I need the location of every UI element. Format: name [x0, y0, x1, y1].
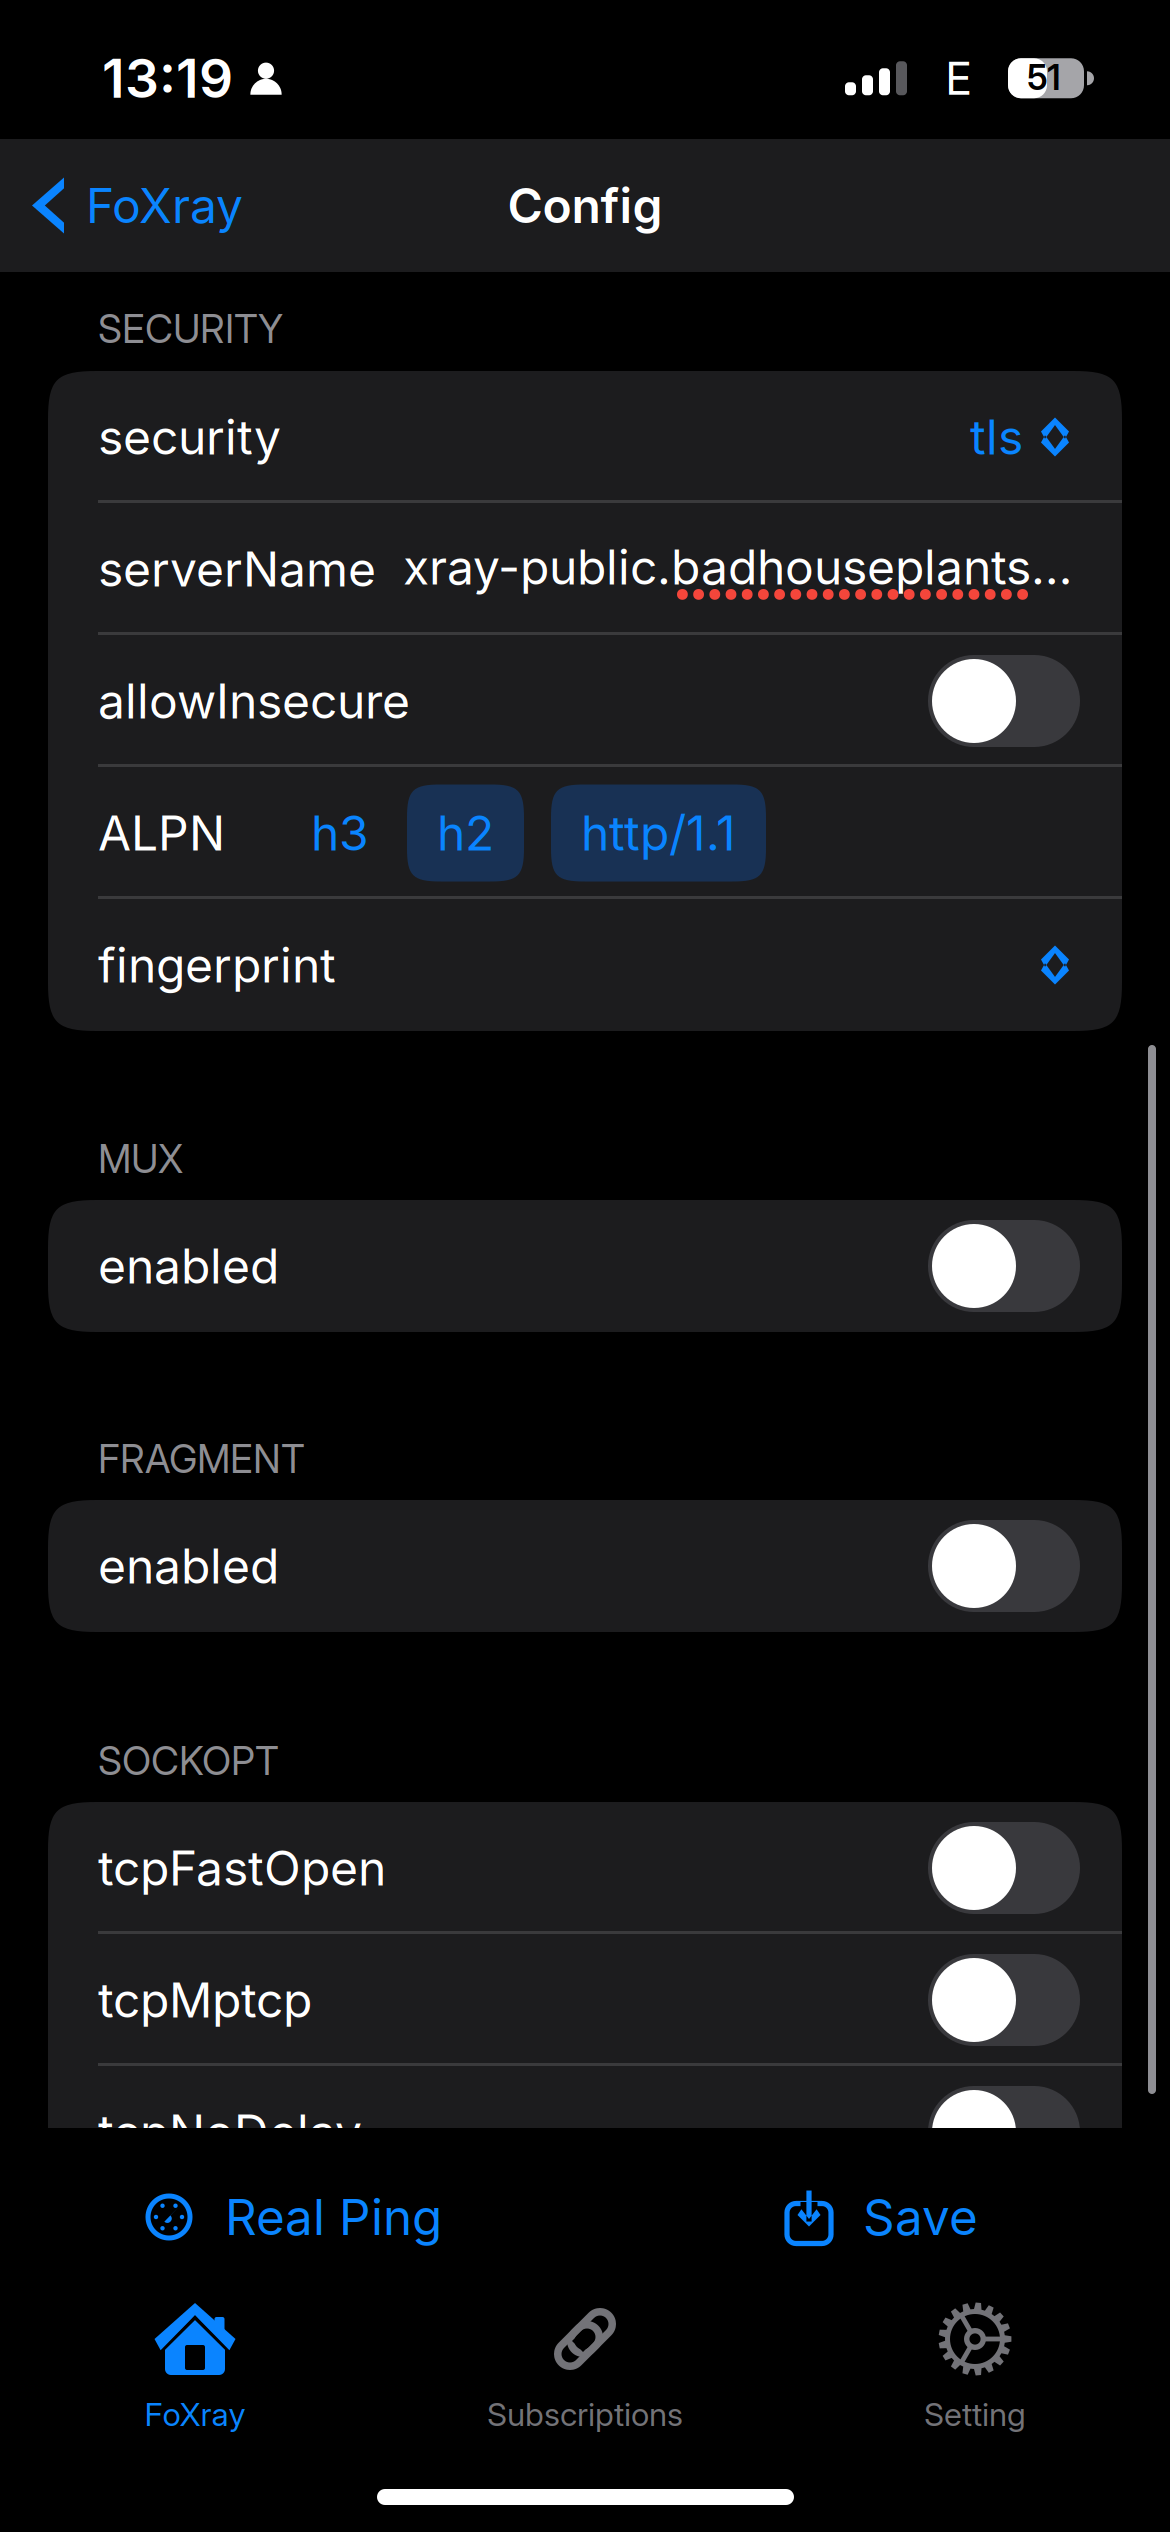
- button[interactable]: Setting: [780, 2291, 1170, 2431]
- button[interactable]: enabled: [48, 1500, 1122, 1632]
- staticText: FoXray: [86, 176, 243, 235]
- button[interactable]: serverName: [48, 503, 1122, 635]
- button[interactable]: tcpFastOpen: [48, 1802, 1122, 1934]
- button[interactable]: tcpNoDelay: [48, 2066, 1122, 2198]
- button[interactable]: Save: [757, 2169, 1008, 2265]
- button[interactable]: FoXray: [0, 2291, 390, 2431]
- staticText: enabled: [98, 1537, 279, 1595]
- staticText: Real Ping: [225, 2187, 442, 2247]
- staticText: Setting: [924, 2395, 1026, 2434]
- button[interactable]: http/1.1: [551, 784, 766, 881]
- staticText: tcpNoDelay: [98, 2103, 362, 2161]
- staticText: enabled: [98, 1237, 279, 1295]
- button[interactable]: allowInsecure: [48, 635, 1122, 767]
- button[interactable]: Subscriptions: [390, 2291, 780, 2431]
- staticText: tcpMptcp: [98, 1971, 312, 2029]
- staticText: http/1.1: [581, 804, 736, 862]
- staticText: FRAGMENT: [98, 1436, 305, 1482]
- button[interactable]: h2: [407, 784, 524, 881]
- button[interactable]: FoXray: [0, 139, 267, 272]
- staticText: tls: [970, 408, 1023, 466]
- staticText: Save: [863, 2187, 978, 2247]
- staticText: E: [945, 51, 972, 106]
- staticText: tcpFastOpen: [98, 1839, 386, 1897]
- button[interactable]: enabled: [48, 1200, 1122, 1332]
- staticText: serverName: [98, 540, 376, 598]
- staticText: xray-public.badhouseplants…: [403, 538, 1072, 596]
- staticText: h2: [437, 804, 494, 862]
- staticText: h3: [311, 804, 369, 862]
- button[interactable]: security: [48, 371, 1122, 503]
- staticText: security: [98, 408, 281, 466]
- staticText: fingerprint: [98, 936, 336, 994]
- staticText: 13:19: [102, 46, 233, 110]
- staticText: allowInsecure: [98, 672, 410, 730]
- staticText: Config: [507, 176, 662, 235]
- button[interactable]: tcpMptcp: [48, 1934, 1122, 2066]
- staticText: Subscriptions: [487, 2395, 683, 2434]
- button[interactable]: h3: [281, 784, 399, 881]
- staticText: 51: [1027, 56, 1061, 98]
- button[interactable]: Real Ping: [113, 2169, 472, 2265]
- staticText: MUX: [98, 1136, 183, 1182]
- button[interactable]: fingerprint: [48, 899, 1122, 1031]
- staticText: ALPN: [98, 804, 225, 862]
- staticText: SOCKOPT: [98, 1738, 279, 1784]
- staticText: SECURITY: [98, 306, 283, 352]
- staticText: FoXray: [144, 2395, 245, 2434]
